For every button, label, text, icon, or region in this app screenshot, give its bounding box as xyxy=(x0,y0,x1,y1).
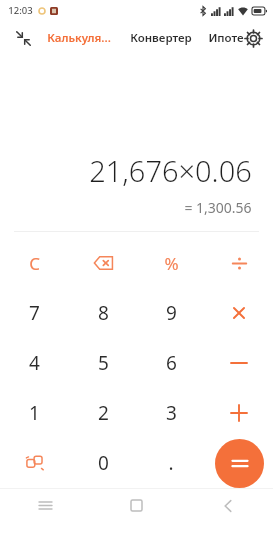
button[interactable]: C xyxy=(0,238,69,288)
staticText: 3 xyxy=(166,400,177,426)
button[interactable]: 0 xyxy=(69,438,137,488)
button[interactable]: 1 xyxy=(0,388,69,438)
button[interactable]: Collapse xyxy=(8,23,38,53)
staticText: Калькуля... xyxy=(47,30,111,46)
staticText: % xyxy=(164,252,179,275)
button[interactable]: 2 xyxy=(69,388,137,438)
button[interactable]: Settings xyxy=(239,24,267,52)
staticText: Ипоте xyxy=(208,30,244,46)
staticText: 12:03 xyxy=(8,4,33,17)
staticText: 8 xyxy=(98,300,109,326)
staticText: C xyxy=(29,252,40,275)
button[interactable]: % xyxy=(137,238,205,288)
button[interactable]: 3 xyxy=(137,388,205,438)
staticText: 7 xyxy=(29,300,40,326)
button[interactable]: 4 xyxy=(0,338,69,388)
button[interactable]: Калькуля... xyxy=(45,25,113,51)
button[interactable]: Home xyxy=(91,489,182,522)
staticText: . xyxy=(168,450,174,476)
staticText: 2 xyxy=(98,400,109,426)
button[interactable]: . xyxy=(137,438,205,488)
staticText: = 1,300.56 xyxy=(184,198,252,217)
button[interactable]: 7 xyxy=(0,288,69,338)
button[interactable]: 6 xyxy=(137,338,205,388)
button[interactable]: Equals xyxy=(215,439,264,488)
staticText: 21,676×0.06 xyxy=(89,151,252,190)
button[interactable]: Multiply xyxy=(205,288,273,338)
button[interactable]: Recents xyxy=(0,489,91,522)
staticText: 0 xyxy=(98,450,109,476)
button[interactable]: Ипоте xyxy=(208,25,244,51)
button[interactable]: 8 xyxy=(69,288,137,338)
button[interactable]: 9 xyxy=(137,288,205,338)
button[interactable]: Minus xyxy=(205,338,273,388)
button[interactable]: Plus xyxy=(205,388,273,438)
staticText: 1 xyxy=(29,400,40,426)
staticText: 4 xyxy=(29,350,40,376)
staticText: 9 xyxy=(166,300,177,326)
button[interactable]: Back xyxy=(182,489,273,522)
button[interactable]: Divide xyxy=(205,238,273,288)
button[interactable]: Конвертер xyxy=(128,25,194,51)
staticText: Конвертер xyxy=(130,30,192,46)
staticText: 6 xyxy=(166,350,177,376)
button[interactable]: Backspace xyxy=(69,238,137,288)
button[interactable]: 5 xyxy=(69,338,137,388)
button[interactable]: Unit converter xyxy=(0,438,69,488)
staticText: 5 xyxy=(98,350,109,376)
